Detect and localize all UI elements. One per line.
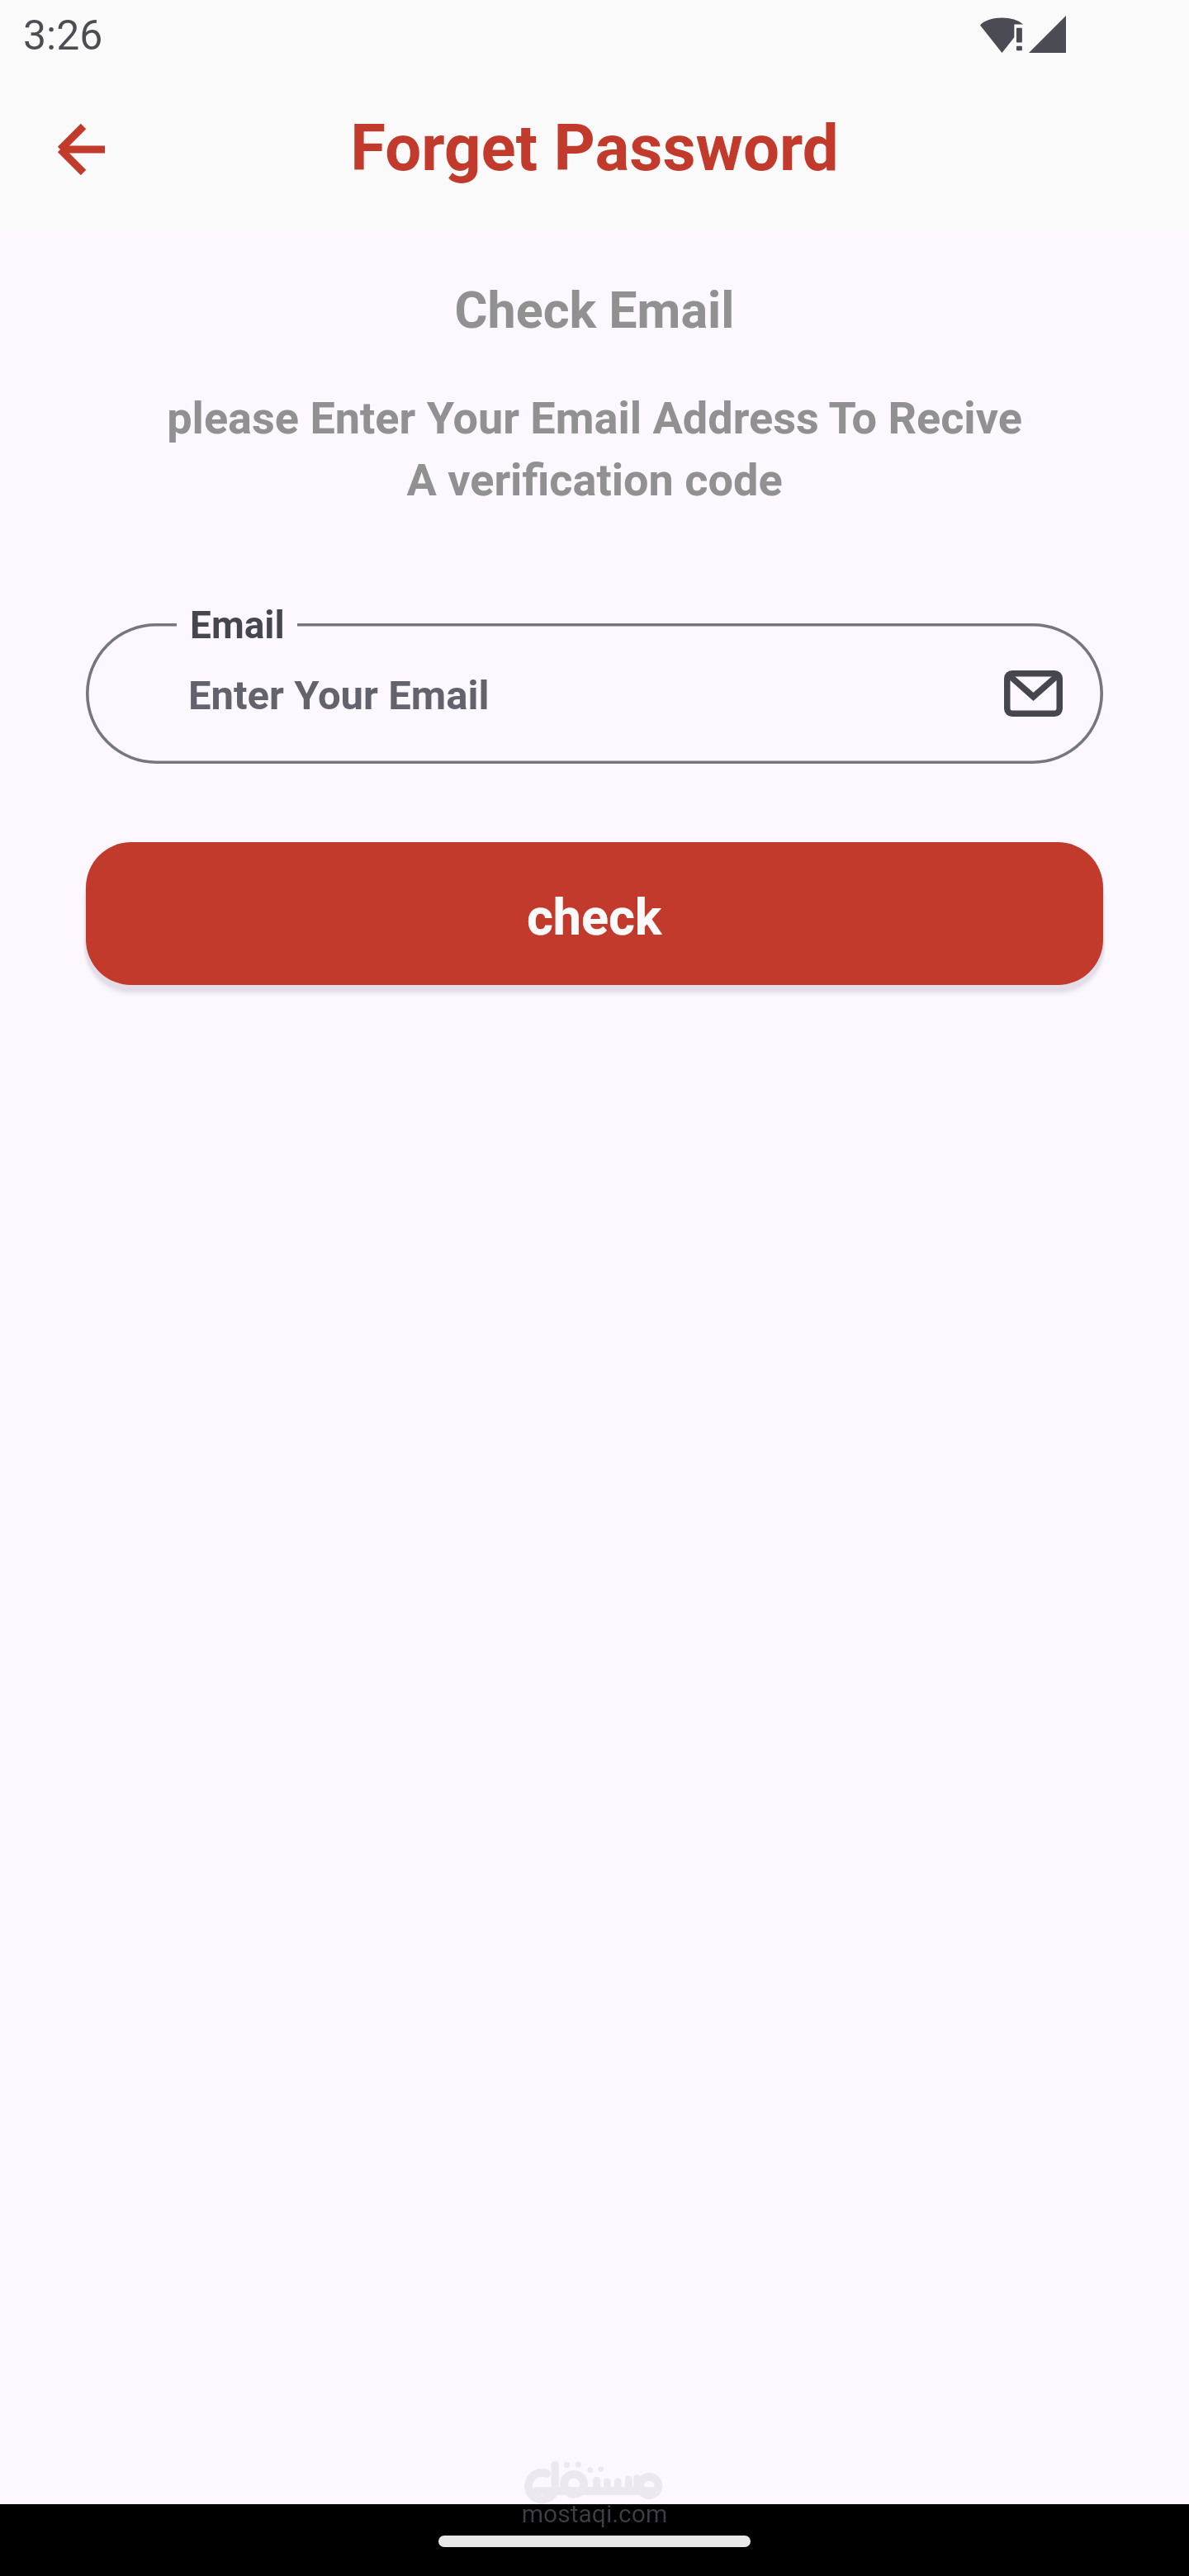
button[interactable]: Email — [86, 623, 1103, 764]
button[interactable]: Back — [31, 100, 130, 199]
staticText: Check Email — [0, 281, 1189, 339]
staticText: Enter Your Email — [188, 672, 490, 719]
staticText: Forget Password — [0, 111, 1189, 186]
staticText: Email — [190, 603, 285, 647]
staticText: mostaqi.com — [0, 2499, 1189, 2528]
staticText: 3:26 — [23, 12, 103, 60]
staticText: please Enter Your Email Address To Reciv… — [0, 392, 1189, 506]
staticText: check — [527, 888, 662, 946]
other: Email — [1004, 670, 1063, 717]
button[interactable]: check — [86, 842, 1103, 985]
